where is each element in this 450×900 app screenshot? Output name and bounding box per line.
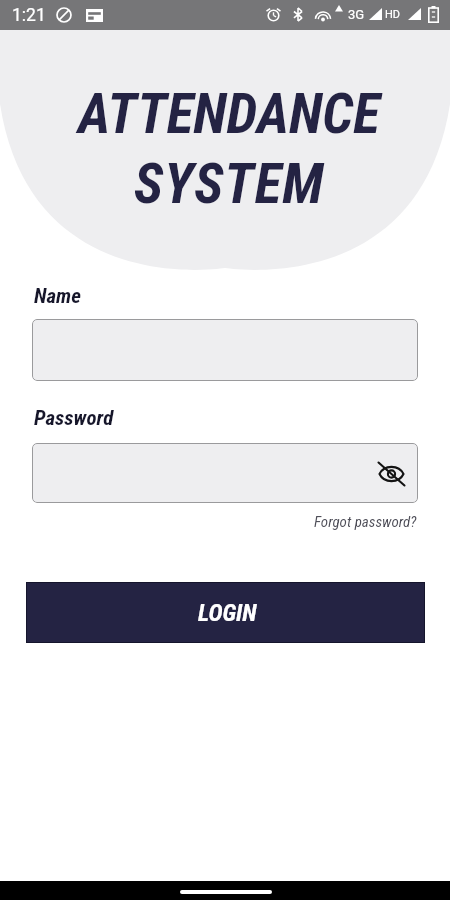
staticText: Name [34, 284, 81, 309]
staticText: ATTENDANCE [4, 81, 450, 147]
button[interactable]: Show password [372, 456, 406, 490]
staticText: Password [34, 406, 114, 431]
staticText: 3G [348, 7, 365, 22]
staticText: 1:21 [12, 5, 46, 26]
staticText: SYSTEM [4, 151, 450, 217]
button[interactable]: Name input [32, 319, 418, 381]
button[interactable]: Password input [32, 443, 418, 503]
button[interactable]: LOGIN [26, 582, 425, 643]
staticText: LOGIN [198, 599, 257, 627]
staticText: HD [385, 8, 401, 21]
button[interactable]: Forgot password? [314, 513, 417, 531]
staticText: Forgot password? [314, 513, 417, 531]
